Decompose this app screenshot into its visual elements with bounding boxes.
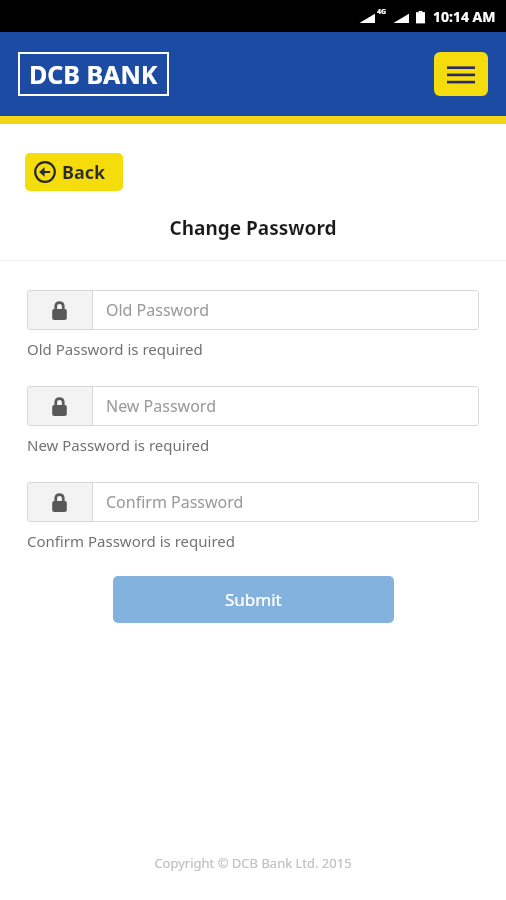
staticText: Confirm Password is required (27, 531, 235, 551)
staticText: DCB BANK (29, 57, 158, 91)
staticText: New Password is required (27, 435, 210, 455)
staticText: Old Password is required (27, 339, 203, 359)
button[interactable]: Confirm Password (27, 482, 479, 522)
staticText: New Password (106, 395, 216, 417)
button[interactable]: New Password (27, 386, 479, 426)
staticText: Submit (225, 588, 282, 611)
button[interactable]: Back (25, 153, 123, 191)
staticText: Copyright © DCB Bank Ltd. 2015 (0, 854, 506, 872)
staticText: Old Password (106, 299, 209, 321)
staticText: 10:14 AM (433, 7, 496, 26)
staticText: Change Password (0, 215, 506, 241)
staticText: Back (62, 160, 106, 185)
button[interactable]: Old Password (27, 290, 479, 330)
staticText: 4G (377, 7, 387, 17)
button[interactable]: Menu (434, 52, 488, 96)
button[interactable]: Submit (113, 576, 394, 623)
button[interactable]: DCB Bank (29, 57, 158, 91)
staticText: Confirm Password (106, 491, 244, 513)
